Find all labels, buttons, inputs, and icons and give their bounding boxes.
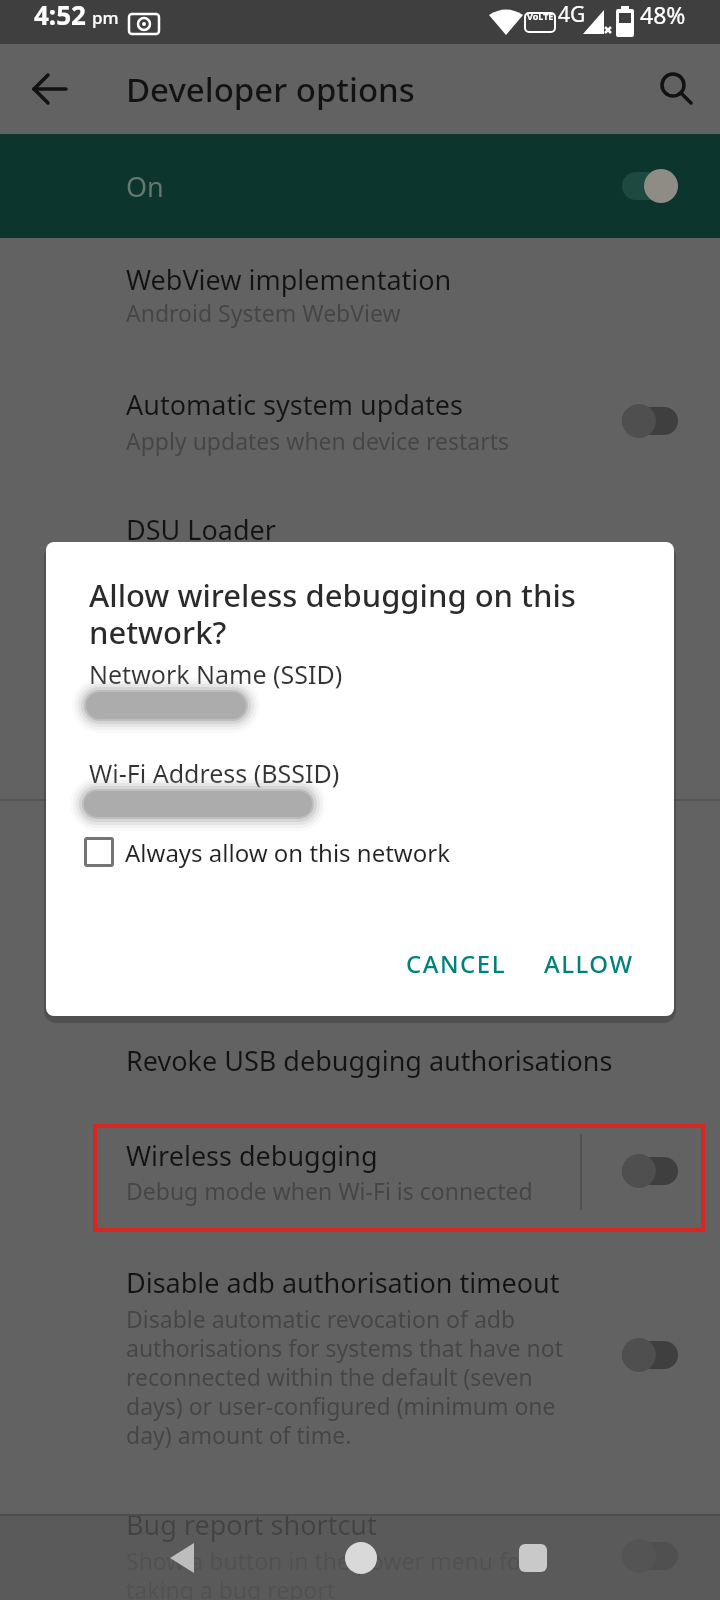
staticText: Always allow on this network bbox=[125, 836, 450, 869]
staticText: On bbox=[126, 168, 164, 205]
button[interactable] bbox=[26, 65, 74, 113]
staticText: Bug report shortcut bbox=[126, 1506, 377, 1543]
staticText: ALLOW bbox=[544, 947, 634, 980]
button[interactable] bbox=[0, 1242, 720, 1322]
staticText: 48% bbox=[640, 0, 686, 30]
staticText: Apply updates when device restarts bbox=[126, 425, 510, 456]
staticText: Allow wireless debugging on this bbox=[89, 574, 576, 616]
button[interactable] bbox=[331, 1528, 391, 1588]
staticText: Disable adb authorisation timeout bbox=[126, 1264, 560, 1301]
staticText: Debug mode when Wi-Fi is connected bbox=[126, 1175, 533, 1206]
staticText: Show a button in the power menu for bbox=[126, 1545, 531, 1576]
staticText: Wireless debugging bbox=[126, 1137, 378, 1174]
button[interactable] bbox=[0, 239, 720, 352]
staticText: CANCEL bbox=[406, 947, 507, 980]
staticText: Revoke USB debugging authorisations bbox=[126, 1042, 613, 1079]
button[interactable] bbox=[652, 65, 700, 113]
staticText: DSU Loader bbox=[126, 511, 276, 548]
staticText: network? bbox=[89, 611, 227, 653]
staticText: Disable automatic revocation of adb bbox=[126, 1303, 516, 1334]
button[interactable] bbox=[76, 826, 674, 880]
button[interactable] bbox=[616, 1536, 684, 1576]
staticText: pm bbox=[92, 6, 119, 29]
button[interactable] bbox=[0, 134, 720, 238]
staticText: day) amount of time. bbox=[126, 1419, 352, 1450]
staticText: VoLTE bbox=[527, 10, 554, 22]
staticText: Developer options bbox=[126, 67, 415, 112]
button[interactable] bbox=[616, 1151, 684, 1191]
staticText: 4G bbox=[558, 0, 586, 29]
staticText: Android System WebView bbox=[126, 297, 401, 328]
staticText: 4:52 bbox=[34, 0, 86, 32]
button[interactable]: CANCEL bbox=[356, 935, 556, 991]
button[interactable] bbox=[0, 364, 720, 480]
staticText: WebView implementation bbox=[126, 261, 452, 298]
staticText: Network Name (SSID) bbox=[89, 657, 343, 691]
staticText: reconnected within the default (seven bbox=[126, 1361, 533, 1392]
button[interactable] bbox=[616, 401, 684, 441]
button[interactable]: ALLOW bbox=[489, 935, 674, 991]
button[interactable] bbox=[616, 1335, 684, 1375]
button[interactable] bbox=[0, 1484, 720, 1600]
button[interactable] bbox=[616, 166, 684, 206]
staticText: authorisations for systems that have not bbox=[126, 1332, 563, 1363]
staticText: Automatic system updates bbox=[126, 386, 463, 423]
button[interactable] bbox=[0, 1115, 720, 1230]
button[interactable] bbox=[0, 1020, 720, 1100]
button[interactable] bbox=[155, 1528, 215, 1588]
staticText: days) or user-configured (minimum one bbox=[126, 1390, 556, 1421]
button[interactable] bbox=[503, 1528, 563, 1588]
button[interactable] bbox=[0, 489, 720, 569]
staticText: Wi-Fi Address (BSSID) bbox=[89, 756, 340, 790]
